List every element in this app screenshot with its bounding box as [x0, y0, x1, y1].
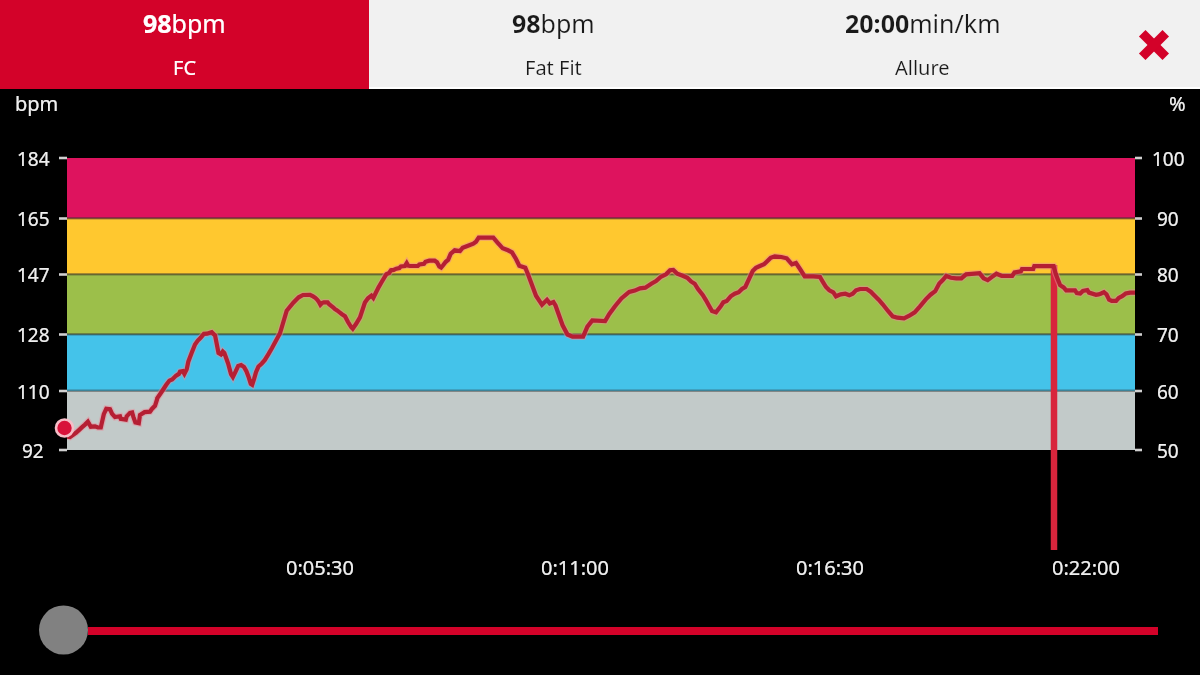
- staticText: 0:16:30: [796, 554, 864, 581]
- staticText: 0:11:00: [541, 554, 609, 581]
- button[interactable]: 98bpm: [0, 0, 369, 89]
- staticText: 90: [1157, 206, 1179, 232]
- staticText: 147: [17, 262, 50, 288]
- button[interactable]: Seek position in session: [36, 601, 1166, 659]
- button[interactable]: Drag handle: [39, 605, 89, 655]
- button[interactable]: Close: [1107, 0, 1200, 89]
- staticText: 70: [1157, 322, 1179, 348]
- button[interactable]: 20:00min/km: [738, 0, 1107, 89]
- staticText: Fat Fit: [525, 54, 582, 81]
- button[interactable]: 98bpm: [369, 0, 738, 89]
- staticText: 165: [17, 206, 50, 232]
- staticText: 0:22:00: [1052, 554, 1120, 581]
- staticText: 92: [22, 438, 44, 464]
- staticText: bpm: [15, 90, 59, 117]
- staticText: 50: [1157, 438, 1179, 464]
- staticText: 98bpm: [143, 6, 226, 40]
- staticText: 20:00min/km: [845, 6, 1001, 40]
- staticText: 110: [17, 379, 50, 405]
- staticText: 128: [17, 322, 50, 348]
- staticText: 100: [1152, 146, 1185, 172]
- staticText: %: [1169, 90, 1186, 117]
- staticText: 60: [1157, 379, 1179, 405]
- staticText: 184: [17, 146, 50, 172]
- staticText: 80: [1157, 262, 1179, 288]
- staticText: Allure: [895, 54, 950, 81]
- staticText: 98bpm: [512, 6, 595, 40]
- staticText: 0:05:30: [286, 554, 354, 581]
- staticText: FC: [173, 54, 197, 81]
